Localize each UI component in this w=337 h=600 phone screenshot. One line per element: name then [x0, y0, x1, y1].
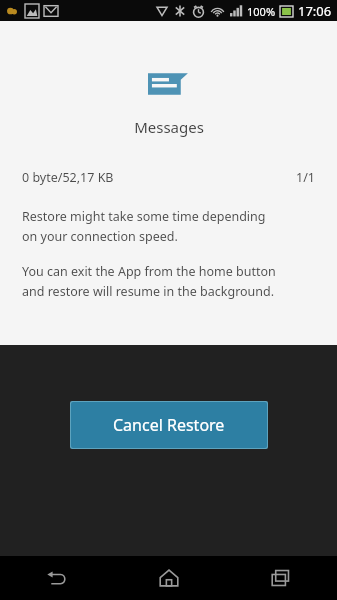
staticText: and restore will resume in the backgroun…	[22, 283, 275, 300]
button[interactable]: Recent apps	[225, 556, 337, 600]
staticText: You can exit the App from the home butto…	[22, 263, 276, 280]
staticText: 0 byte/52,17 KB	[22, 169, 114, 186]
button[interactable]: Home	[113, 556, 225, 600]
staticText: on your connection speed.	[22, 228, 178, 245]
button[interactable]: Back	[0, 556, 113, 600]
staticText: 100%	[247, 4, 276, 19]
staticText: 1/1	[296, 169, 315, 186]
button[interactable]: Cancel Restore	[71, 402, 267, 448]
staticText: Cancel Restore	[113, 414, 225, 436]
staticText: Restore might take some time depending	[22, 208, 266, 225]
staticText: Messages	[134, 117, 204, 137]
staticText: 17:06	[298, 2, 332, 20]
